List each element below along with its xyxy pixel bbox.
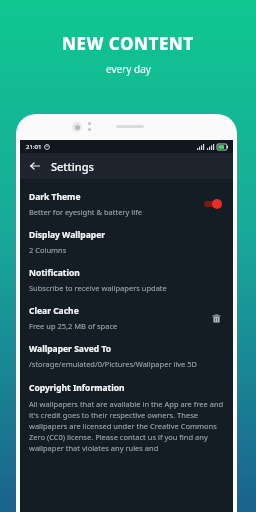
button[interactable]: Wallpaper Saved To	[29, 343, 224, 369]
button[interactable]: Clear cache	[208, 310, 224, 326]
staticText: /storage/emulated/0/Pictures/Wallpaper l…	[29, 359, 198, 369]
button[interactable]: Back	[27, 158, 43, 174]
staticText: 21:01	[26, 143, 42, 151]
button[interactable]: Notification	[29, 267, 224, 293]
staticText: All wallpapers that are available in the…	[29, 399, 224, 453]
button[interactable]: Dark theme toggle	[202, 197, 224, 211]
staticText: Clear Cache	[29, 305, 79, 317]
button[interactable]: Display Wallpaper	[29, 229, 224, 255]
staticText: NEW CONTENT	[62, 32, 194, 55]
staticText: Notification	[29, 267, 80, 279]
staticText: Better for eyesight & battery life	[29, 207, 142, 217]
staticText: Free up 25,2 MB of space	[29, 321, 118, 331]
staticText: Subscribe to receive wallpapers update	[29, 283, 167, 293]
staticText: Dark Theme	[29, 191, 81, 203]
staticText: 2 Columns	[29, 245, 67, 255]
staticText: Wallpaper Saved To	[29, 343, 112, 355]
staticText: Display Wallpaper	[29, 229, 106, 241]
staticText: Copyright Information	[29, 382, 125, 394]
button[interactable]: Dark Theme	[29, 191, 224, 217]
button[interactable]: Copyright Information	[29, 382, 224, 453]
staticText: every day	[106, 62, 151, 76]
staticText: Settings	[51, 159, 94, 174]
button[interactable]: Clear Cache	[29, 305, 224, 331]
